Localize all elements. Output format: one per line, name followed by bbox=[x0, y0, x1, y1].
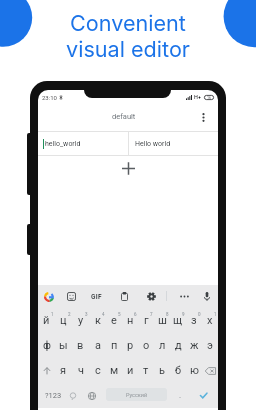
staticText: ч bbox=[78, 364, 84, 377]
staticText: ш bbox=[158, 314, 167, 327]
staticText: Hello world bbox=[135, 140, 171, 148]
button[interactable]: ?123 bbox=[41, 383, 65, 408]
button[interactable]: р bbox=[122, 333, 138, 358]
button[interactable]: Emoji bbox=[65, 383, 81, 408]
staticText: м bbox=[110, 364, 119, 377]
staticText: щ bbox=[173, 314, 183, 327]
button[interactable]: у bbox=[72, 308, 89, 333]
staticText: 1 bbox=[214, 312, 217, 317]
button[interactable]: More options bbox=[177, 285, 191, 308]
staticText: . bbox=[179, 391, 182, 400]
staticText: э bbox=[207, 339, 213, 352]
staticText: г bbox=[144, 314, 149, 327]
staticText: й bbox=[43, 314, 50, 327]
button[interactable]: Settings bbox=[144, 285, 158, 308]
staticText: и bbox=[127, 364, 134, 377]
staticText: 23:10 bbox=[42, 94, 57, 101]
staticText: с bbox=[95, 364, 101, 377]
staticText: я bbox=[60, 364, 67, 377]
staticText: visual editor bbox=[66, 36, 190, 62]
staticText: GIF bbox=[91, 293, 102, 301]
button[interactable]: ы bbox=[55, 333, 72, 358]
button[interactable]: Voice input bbox=[200, 285, 214, 308]
staticText: 1 bbox=[51, 312, 54, 317]
button[interactable]: Русский bbox=[106, 388, 167, 401]
button[interactable]: ч bbox=[72, 358, 89, 383]
staticText: 8 bbox=[166, 312, 169, 317]
button[interactable]: э bbox=[202, 333, 218, 358]
staticText: ь bbox=[159, 364, 165, 377]
staticText: 2 bbox=[68, 312, 71, 317]
staticText: р bbox=[127, 339, 134, 352]
staticText: в bbox=[77, 339, 84, 352]
staticText: 5 bbox=[118, 312, 121, 317]
button[interactable]: Stickers bbox=[64, 285, 78, 308]
staticText: 4 bbox=[102, 312, 105, 317]
button[interactable]: щ bbox=[170, 308, 186, 333]
button[interactable]: а bbox=[89, 333, 106, 358]
staticText: п bbox=[111, 339, 118, 352]
button[interactable]: б bbox=[170, 358, 186, 383]
button[interactable]: г bbox=[138, 308, 154, 333]
button[interactable]: в bbox=[72, 333, 89, 358]
staticText: 7 bbox=[150, 312, 153, 317]
button[interactable]: More options bbox=[196, 110, 210, 124]
button[interactable]: Hello world bbox=[129, 132, 218, 155]
staticText: Convenient bbox=[70, 10, 186, 36]
button[interactable]: о bbox=[138, 333, 154, 358]
button[interactable]: ф bbox=[38, 333, 55, 358]
staticText: 0 bbox=[198, 312, 201, 317]
staticText: б bbox=[175, 364, 182, 377]
staticText: ?123 bbox=[45, 391, 62, 400]
button[interactable]: я bbox=[55, 358, 72, 383]
button[interactable]: Google search bbox=[42, 285, 56, 308]
button[interactable]: н bbox=[122, 308, 138, 333]
staticText: а bbox=[95, 339, 101, 352]
staticText: H+ bbox=[194, 94, 201, 100]
staticText: з bbox=[191, 314, 197, 327]
button[interactable]: с bbox=[89, 358, 106, 383]
staticText: д bbox=[175, 339, 182, 352]
staticText: х bbox=[207, 314, 213, 327]
staticText: т bbox=[143, 364, 149, 377]
staticText: ы bbox=[59, 339, 68, 352]
staticText: Русский bbox=[126, 392, 148, 398]
button[interactable]: Add row bbox=[119, 159, 137, 177]
button[interactable]: GIF bbox=[88, 285, 104, 308]
button[interactable]: е bbox=[106, 308, 122, 333]
button[interactable]: й bbox=[38, 308, 55, 333]
staticText: у bbox=[78, 314, 84, 327]
button[interactable]: Backspace bbox=[202, 358, 218, 383]
button[interactable]: и bbox=[122, 358, 138, 383]
staticText: е bbox=[111, 314, 117, 327]
button[interactable]: ж bbox=[186, 333, 202, 358]
staticText: л bbox=[159, 339, 166, 352]
button[interactable]: Change language bbox=[84, 383, 100, 408]
staticText: н bbox=[127, 314, 134, 327]
button[interactable]: Shift bbox=[38, 358, 55, 383]
button[interactable]: п bbox=[106, 333, 122, 358]
staticText: hello_world bbox=[45, 140, 81, 148]
button[interactable]: Clipboard bbox=[117, 285, 131, 308]
staticText: 6 bbox=[134, 312, 137, 317]
button[interactable]: м bbox=[106, 358, 122, 383]
button[interactable]: Done bbox=[194, 383, 212, 408]
staticText: 3 bbox=[85, 312, 88, 317]
button[interactable]: hello_world bbox=[38, 132, 128, 155]
staticText: ц bbox=[60, 314, 67, 327]
button[interactable]: х bbox=[202, 308, 218, 333]
button[interactable]: ш bbox=[154, 308, 170, 333]
button[interactable]: д bbox=[170, 333, 186, 358]
staticText: о bbox=[143, 339, 150, 352]
button[interactable]: ю bbox=[186, 358, 202, 383]
button[interactable]: л bbox=[154, 333, 170, 358]
staticText: 16 bbox=[207, 96, 212, 100]
staticText: default bbox=[112, 112, 136, 121]
button[interactable]: з bbox=[186, 308, 202, 333]
button[interactable]: т bbox=[138, 358, 154, 383]
staticText: 9 bbox=[182, 312, 185, 317]
button[interactable]: ь bbox=[154, 358, 170, 383]
button[interactable]: к bbox=[89, 308, 106, 333]
button[interactable]: ц bbox=[55, 308, 72, 333]
